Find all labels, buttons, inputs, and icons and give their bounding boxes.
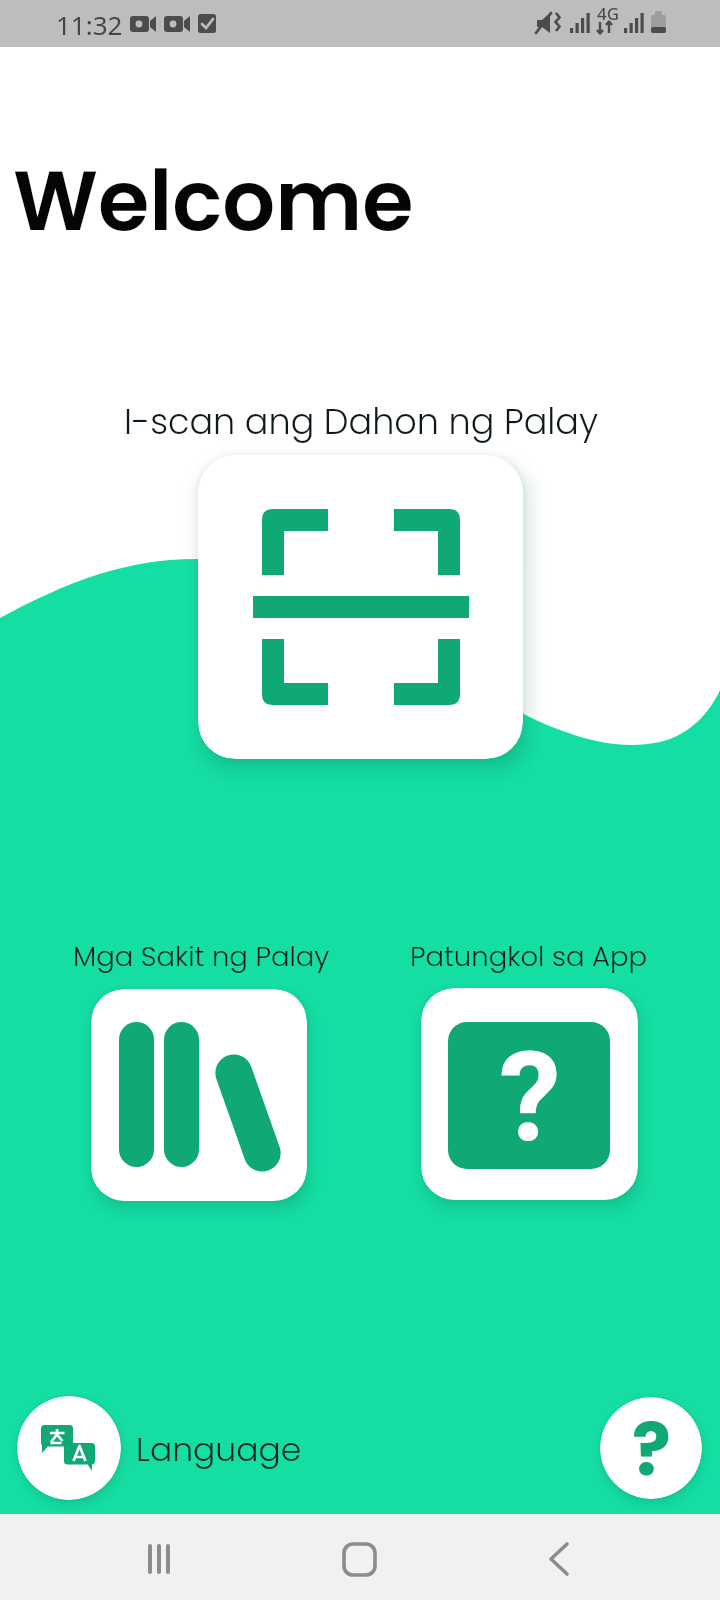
staticText: Language xyxy=(136,1426,302,1472)
button[interactable]: Scan rice leaf xyxy=(198,455,523,759)
button[interactable]: Help xyxy=(600,1397,702,1499)
staticText: 4G xyxy=(597,2,620,25)
staticText: ? xyxy=(499,1025,561,1169)
staticText: Mga Sakit ng Palay xyxy=(73,937,330,975)
button[interactable]: About the app xyxy=(421,988,638,1200)
staticText: Patungkol sa App xyxy=(410,937,648,975)
staticText: ? xyxy=(632,1399,671,1499)
button[interactable]: Language xyxy=(17,1396,121,1500)
button[interactable]: Rice diseases xyxy=(91,989,307,1201)
staticText: Welcome xyxy=(13,143,414,259)
staticText: I-scan ang Dahon ng Palay xyxy=(124,397,599,446)
staticText: 11:32 xyxy=(56,7,123,42)
